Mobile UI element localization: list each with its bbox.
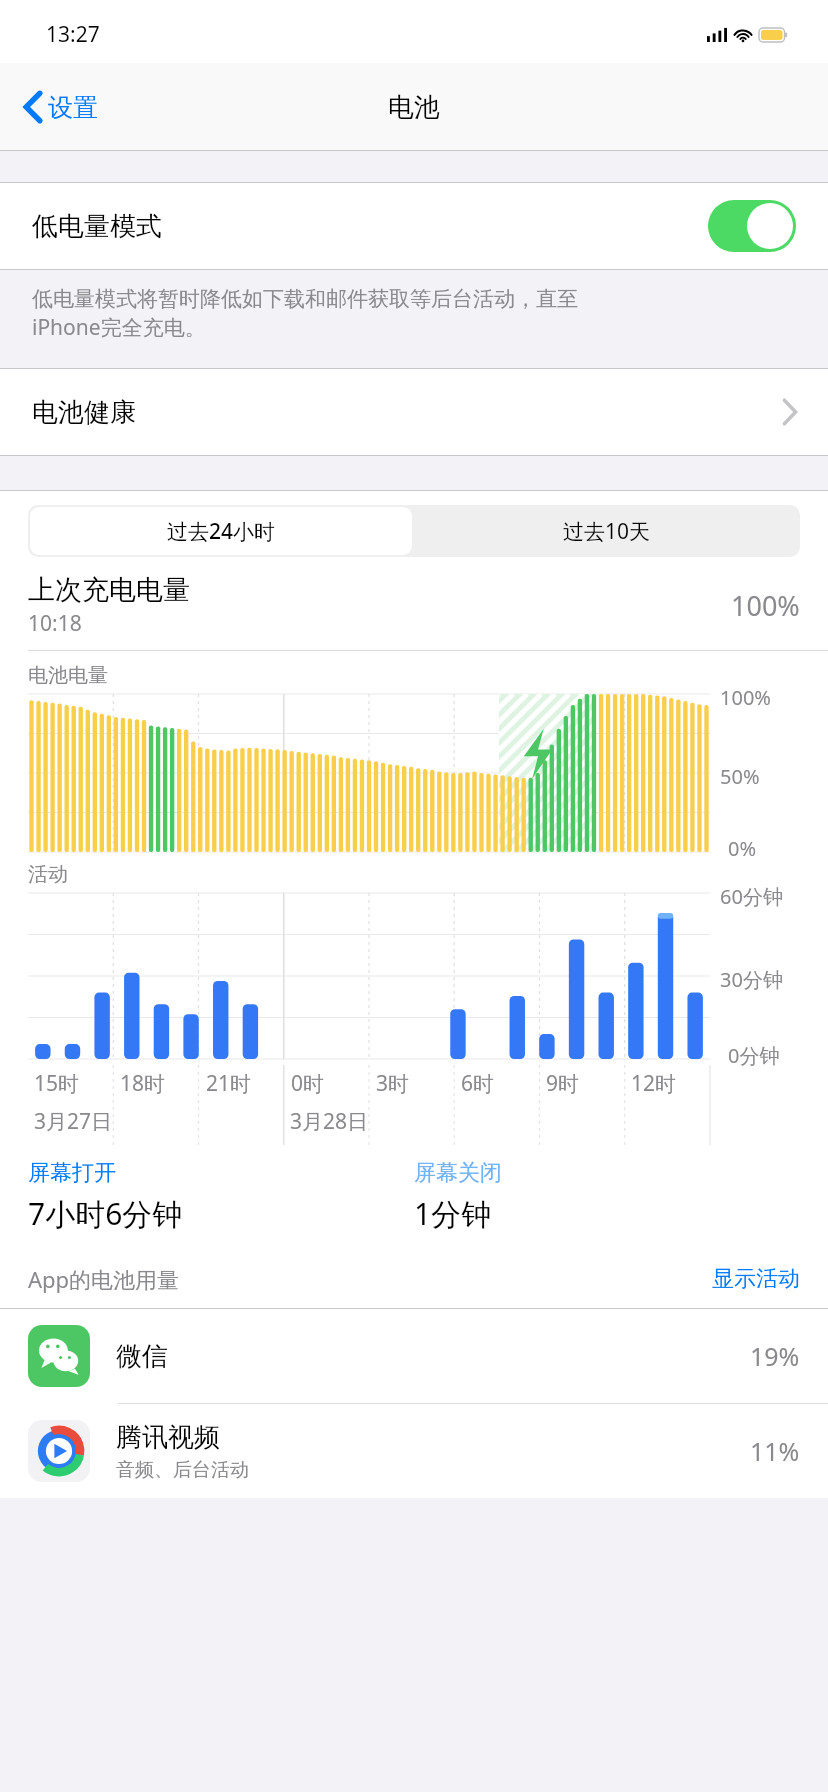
- staticText: 显示活动: [712, 1265, 800, 1293]
- staticText: 电池电量: [28, 663, 108, 688]
- staticText: 9时: [546, 1069, 580, 1098]
- button[interactable]: 显示活动: [712, 1265, 800, 1293]
- staticText: 7小时6分钟: [28, 1193, 183, 1234]
- staticText: 腾讯视频: [116, 1421, 220, 1454]
- staticText: 电池健康: [32, 396, 136, 429]
- staticText: 过去10天: [563, 517, 651, 546]
- staticText: 上次充电电量: [28, 573, 190, 607]
- staticText: 屏幕关闭: [414, 1159, 502, 1187]
- staticText: 低电量模式: [32, 210, 162, 243]
- staticText: 过去24小时: [167, 517, 276, 546]
- staticText: 0时: [291, 1069, 325, 1098]
- button[interactable]: 设置: [16, 83, 106, 131]
- staticText: 21时: [206, 1069, 252, 1098]
- button[interactable]: 低电量模式: [0, 183, 828, 269]
- staticText: 100%: [720, 684, 771, 711]
- staticText: 19%: [750, 1339, 800, 1373]
- staticText: 50%: [720, 763, 760, 790]
- staticText: 微信: [116, 1340, 168, 1373]
- button[interactable]: 腾讯视频: [0, 1404, 828, 1498]
- staticText: 屏幕打开: [28, 1159, 116, 1187]
- staticText: 3月28日: [290, 1107, 369, 1136]
- staticText: 0分钟: [728, 1042, 828, 1069]
- staticText: 11%: [750, 1434, 800, 1468]
- button[interactable]: 过去24小时: [30, 507, 412, 555]
- staticText: 100%: [731, 587, 800, 624]
- staticText: App的电池用量: [28, 1264, 180, 1294]
- staticText: 30分钟: [720, 966, 783, 993]
- staticText: 3时: [376, 1069, 410, 1098]
- staticText: 活动: [28, 862, 68, 887]
- button[interactable]: 过去10天: [414, 505, 800, 557]
- staticText: 12时: [631, 1069, 677, 1098]
- staticText: 18时: [120, 1069, 166, 1098]
- staticText: 13:27: [46, 20, 100, 49]
- staticText: 6时: [461, 1069, 495, 1098]
- staticText: 电池: [388, 91, 440, 124]
- staticText: 设置: [48, 92, 98, 123]
- staticText: 1分钟: [414, 1193, 492, 1234]
- staticText: 60分钟: [720, 883, 783, 910]
- staticText: 音频、后台活动: [116, 1458, 249, 1482]
- button[interactable]: 低电量模式开关: [708, 200, 796, 252]
- button[interactable]: 微信: [0, 1309, 828, 1403]
- staticText: 3月27日: [34, 1107, 113, 1136]
- staticText: 15时: [34, 1069, 80, 1098]
- staticText: 低电量模式将暂时降低如下载和邮件获取等后台活动，直至 iPhone完全充电。: [32, 286, 578, 342]
- staticText: 0%: [728, 835, 828, 862]
- staticText: 10:18: [28, 609, 82, 638]
- button[interactable]: 电池健康: [0, 369, 828, 455]
